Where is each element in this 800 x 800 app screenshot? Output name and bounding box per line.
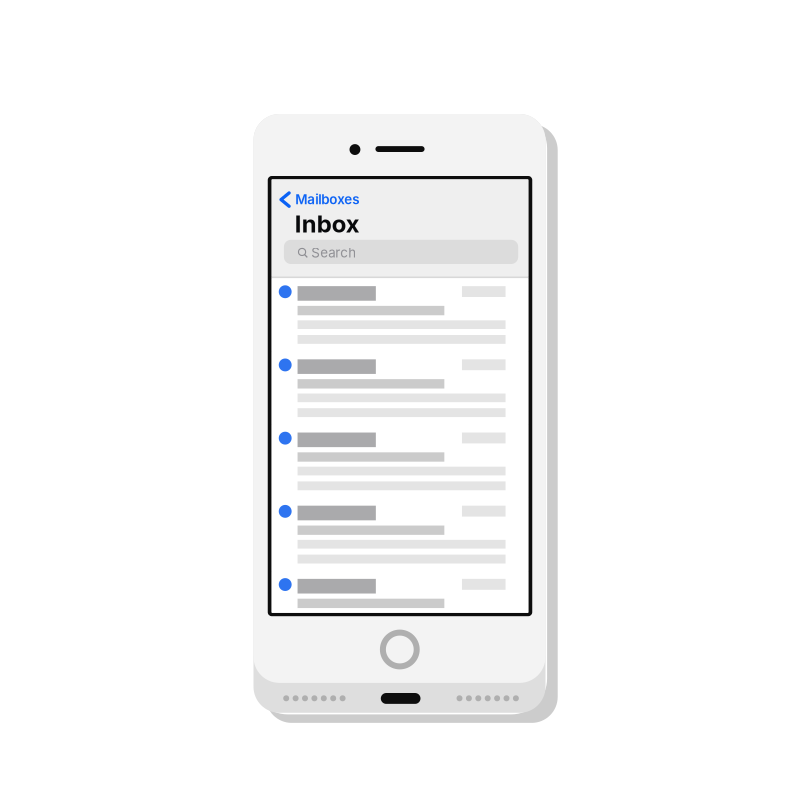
button[interactable]: Unread message 3 [272, 425, 528, 498]
button[interactable]: Unread message 1 [272, 278, 528, 351]
staticText: Mailboxes [295, 191, 359, 207]
button[interactable]: Unread message 4 [272, 498, 528, 571]
button[interactable]: Mailboxes [279, 191, 359, 208]
staticText: Search [311, 245, 356, 261]
button[interactable]: Home [380, 630, 420, 669]
button[interactable]: Unread message 2 [272, 351, 528, 425]
staticText: Inbox [295, 209, 360, 238]
button[interactable]: Unread message 5 [272, 571, 528, 644]
button[interactable]: Search [283, 241, 519, 263]
